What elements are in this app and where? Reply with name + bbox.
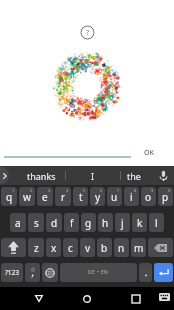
button[interactable]: c: [63, 238, 78, 257]
staticText: 5: [83, 188, 86, 193]
button[interactable]: l: [149, 213, 164, 232]
staticText: 8: [134, 188, 137, 193]
button[interactable]: s: [28, 213, 44, 232]
button[interactable]: p: [158, 187, 173, 206]
button[interactable]: x: [46, 238, 61, 257]
button[interactable]: z: [28, 238, 44, 257]
staticText: y: [95, 190, 101, 204]
button[interactable]: Home: [76, 288, 97, 309]
staticText: ?123: [5, 268, 19, 277]
button[interactable]: g: [81, 213, 96, 232]
staticText: j: [121, 216, 124, 230]
button[interactable]: Switch keyboard: [155, 288, 173, 306]
button[interactable]: v: [80, 238, 95, 257]
button[interactable]: n: [114, 238, 129, 257]
staticText: m: [134, 241, 144, 255]
staticText: u: [111, 190, 118, 204]
button[interactable]: t: [73, 187, 88, 206]
staticText: 6: [100, 188, 103, 193]
button[interactable]: Enter: [154, 263, 173, 282]
staticText: w: [23, 190, 31, 204]
staticText: ?: [86, 28, 90, 38]
button[interactable]: Period: [139, 263, 152, 282]
staticText: c: [68, 241, 73, 255]
button[interactable]: f: [64, 213, 79, 232]
button[interactable]: OK: [136, 146, 162, 160]
staticText: 3: [48, 188, 51, 193]
staticText: o: [145, 190, 152, 204]
staticText: the: [127, 170, 141, 182]
button[interactable]: a: [10, 213, 26, 232]
button[interactable]: b: [97, 238, 112, 257]
staticText: t: [79, 190, 83, 204]
button[interactable]: u: [107, 187, 122, 206]
button[interactable]: w: [19, 187, 35, 206]
staticText: I: [91, 170, 95, 182]
staticText: a: [15, 216, 21, 230]
button[interactable]: h: [98, 213, 113, 232]
button[interactable]: Backspace: [148, 238, 173, 257]
button[interactable]: I: [66, 166, 120, 185]
staticText: x: [51, 241, 57, 255]
button[interactable]: Back: [28, 288, 49, 309]
button[interactable]: y: [90, 187, 105, 206]
staticText: z: [34, 241, 39, 255]
staticText: 9: [151, 188, 154, 193]
staticText: k: [137, 216, 143, 230]
staticText: d: [51, 216, 58, 230]
staticText: r: [61, 190, 66, 204]
staticText: thanks: [27, 170, 56, 182]
staticText: b: [101, 241, 108, 255]
button[interactable]: Recent apps: [125, 288, 146, 309]
button[interactable]: j: [115, 213, 130, 232]
button[interactable]: Comma: [25, 263, 40, 282]
button[interactable]: Shift: [1, 238, 26, 257]
button[interactable]: q: [1, 187, 17, 206]
staticText: q: [6, 190, 13, 204]
button[interactable]: Help: [80, 25, 95, 40]
button[interactable]: d: [46, 213, 62, 232]
button[interactable]: o: [141, 187, 156, 206]
staticText: g: [85, 216, 92, 230]
staticText: h: [102, 216, 109, 230]
staticText: 2: [30, 188, 33, 193]
staticText: 0: [168, 188, 171, 193]
staticText: l: [155, 216, 158, 230]
button[interactable]: Change language: [42, 263, 58, 282]
button[interactable]: More suggestions: [0, 167, 9, 184]
button[interactable]: Voice input: [151, 166, 174, 185]
button[interactable]: the: [121, 166, 146, 185]
staticText: OK: [144, 148, 154, 158]
staticText: p: [162, 190, 169, 204]
staticText: e: [42, 190, 48, 204]
staticText: s: [34, 216, 39, 230]
button[interactable]: thanks: [15, 166, 68, 185]
staticText: i: [130, 190, 133, 204]
staticText: f: [70, 216, 74, 230]
staticText: v: [85, 241, 91, 255]
staticText: n: [118, 241, 125, 255]
staticText: DE • EN: [88, 269, 109, 276]
button[interactable]: e: [37, 187, 53, 206]
staticText: 7: [117, 188, 120, 193]
button[interactable]: r: [55, 187, 71, 206]
staticText: 1: [12, 188, 15, 193]
button[interactable]: m: [131, 238, 146, 257]
button[interactable]: i: [124, 187, 139, 206]
staticText: 4: [66, 188, 69, 193]
button[interactable]: ?123: [1, 263, 23, 282]
button[interactable]: DE • EN: [60, 263, 137, 282]
button[interactable]: k: [132, 213, 147, 232]
